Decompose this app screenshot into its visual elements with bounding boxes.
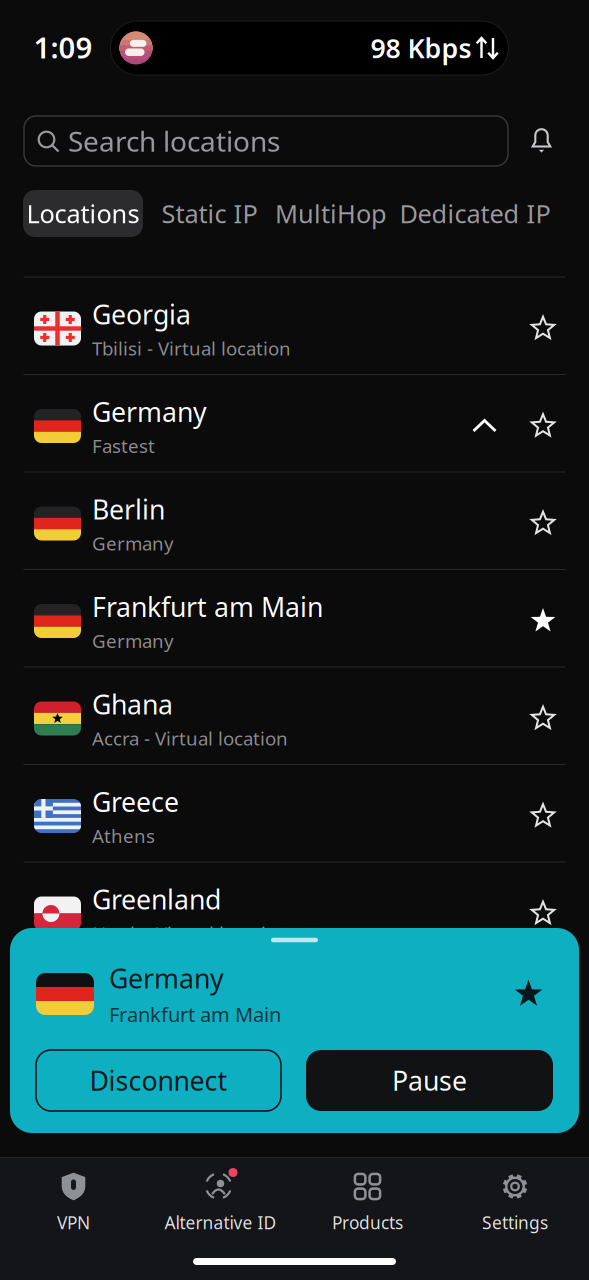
- staticText: Greenland: [92, 881, 221, 917]
- staticText: Georgia: [92, 296, 191, 332]
- button[interactable]: Dedicated IP: [399, 197, 550, 230]
- button[interactable]: Search locations: [24, 116, 508, 166]
- staticText: Fastest: [92, 433, 155, 458]
- staticText: 98 Kbps: [370, 30, 471, 66]
- button[interactable]: VPN: [0, 1170, 147, 1234]
- staticText: Berlin: [92, 491, 165, 527]
- staticText: Tbilisi - Virtual location: [92, 336, 291, 361]
- staticText: MultiHop: [275, 197, 387, 230]
- staticText: Germany: [92, 531, 174, 556]
- staticText: Pause: [392, 1063, 467, 1098]
- button[interactable]: [514, 979, 543, 1008]
- button[interactable]: Georgia: [0, 296, 589, 361]
- button[interactable]: [530, 413, 556, 439]
- button[interactable]: Ghana: [0, 686, 589, 751]
- button[interactable]: [530, 900, 556, 926]
- staticText: Alternative ID: [164, 1211, 276, 1234]
- staticText: Search locations: [68, 122, 280, 160]
- button[interactable]: [530, 510, 556, 536]
- staticText: Settings: [482, 1211, 548, 1234]
- staticText: Ghana: [92, 686, 173, 722]
- button[interactable]: Frankfurt am Main: [0, 589, 589, 653]
- staticText: VPN: [57, 1211, 90, 1234]
- button[interactable]: Greece: [0, 784, 589, 848]
- staticText: Athens: [92, 823, 155, 848]
- staticText: Static IP: [161, 197, 257, 230]
- button[interactable]: Pause: [306, 1050, 553, 1111]
- staticText: Germany: [92, 394, 207, 429]
- staticText: Accra - Virtual location: [92, 726, 288, 751]
- button[interactable]: [528, 125, 554, 155]
- button[interactable]: [530, 608, 556, 634]
- button[interactable]: [472, 418, 497, 434]
- button[interactable]: Germany: [0, 394, 589, 458]
- button[interactable]: [530, 803, 556, 829]
- staticText: Germany: [92, 628, 174, 653]
- button[interactable]: MultiHop: [275, 197, 387, 230]
- staticText: Disconnect: [89, 1063, 227, 1098]
- button[interactable]: [530, 315, 556, 341]
- staticText: Nuuk - Virtual location: [92, 921, 289, 946]
- button[interactable]: Static IP: [161, 197, 257, 230]
- staticText: 1:09: [33, 27, 92, 66]
- staticText: Frankfurt am Main: [92, 589, 323, 624]
- button[interactable]: Greenland: [0, 881, 589, 946]
- button[interactable]: Disconnect: [36, 1050, 281, 1111]
- button[interactable]: Products: [294, 1170, 441, 1234]
- button[interactable]: Locations: [23, 190, 143, 237]
- button[interactable]: Alternative ID: [147, 1170, 294, 1234]
- staticText: Greece: [92, 784, 179, 819]
- staticText: Frankfurt am Main: [109, 1001, 281, 1027]
- staticText: Products: [332, 1211, 403, 1234]
- staticText: Dedicated IP: [399, 197, 550, 230]
- button[interactable]: Berlin: [0, 491, 589, 556]
- staticText: Germany: [109, 960, 224, 996]
- button[interactable]: [530, 705, 556, 731]
- button[interactable]: Settings: [441, 1170, 589, 1234]
- staticText: Locations: [26, 197, 139, 230]
